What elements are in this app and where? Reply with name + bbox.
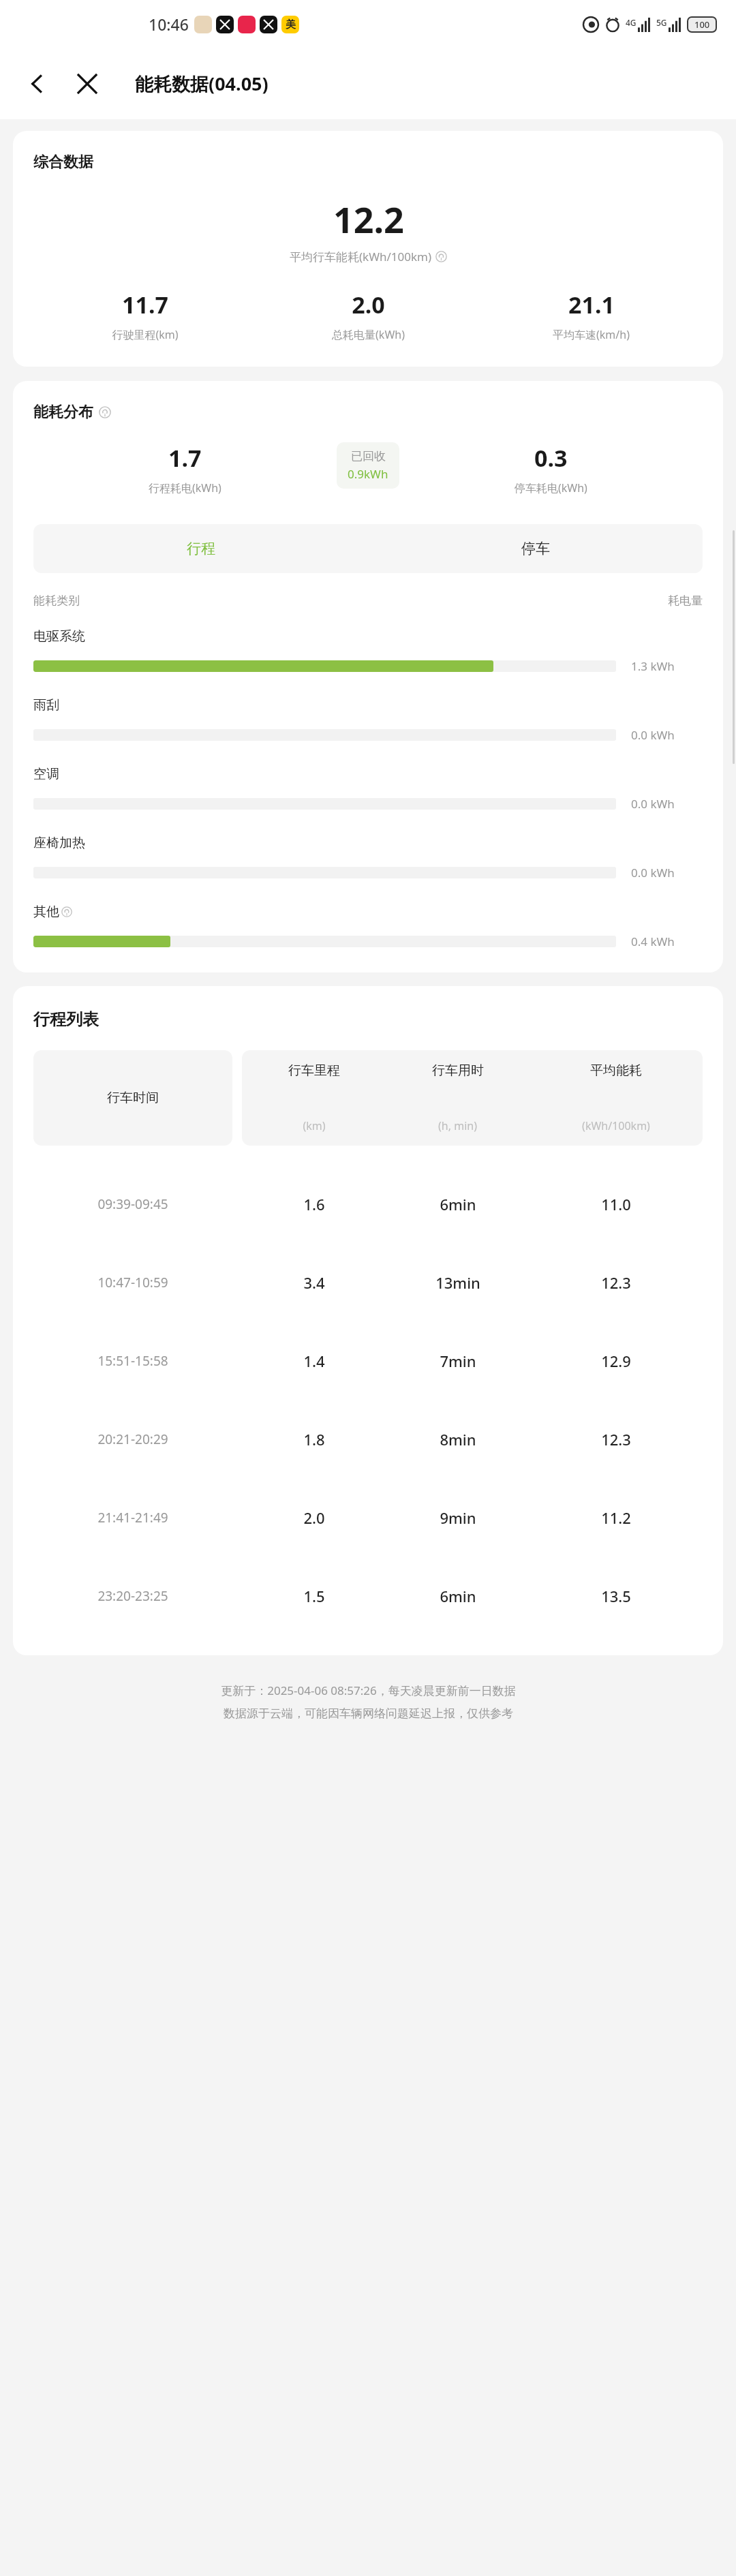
staticText: 13.5 — [601, 1586, 631, 1606]
staticText: 12.9 — [601, 1351, 631, 1371]
button[interactable]: Close — [65, 62, 109, 106]
staticText: 行程耗电(kWh) — [149, 480, 221, 495]
staticText: 行程 — [187, 540, 215, 557]
button[interactable]: 23:20-23:25 — [33, 1557, 703, 1635]
staticText: 21:41-21:49 — [97, 1509, 168, 1527]
staticText: (kWh/100km) — [582, 1118, 650, 1133]
staticText: 行程列表 — [33, 1009, 99, 1030]
staticText: 5G — [656, 17, 667, 28]
staticText: 数据源于云端，可能因车辆网络问题延迟上报，仅供参考 — [224, 1706, 513, 1721]
staticText: 1.8 — [303, 1429, 325, 1450]
staticText: 4G — [626, 17, 637, 28]
staticText: 其他 — [33, 904, 59, 920]
button[interactable]: 10:47-10:59 — [33, 1243, 703, 1321]
staticText: 6min — [440, 1194, 476, 1214]
staticText: 13min — [435, 1272, 480, 1293]
staticText: 15:51-15:58 — [97, 1352, 168, 1370]
staticText: 0.4 kWh — [631, 934, 675, 949]
staticText: 能耗分布 — [33, 403, 93, 422]
staticText: 11.2 — [601, 1507, 631, 1528]
button[interactable]: 行程 — [33, 524, 368, 573]
staticText: 11.0 — [601, 1194, 631, 1214]
button[interactable]: 21:41-21:49 — [33, 1478, 703, 1557]
staticText: 0.3 — [534, 442, 568, 474]
staticText: 美 — [286, 18, 296, 31]
staticText: 平均能耗 — [590, 1062, 642, 1079]
staticText: 7min — [440, 1351, 476, 1371]
staticText: (km) — [303, 1118, 326, 1133]
staticText: 空调 — [33, 766, 59, 782]
staticText: 1.3 kWh — [631, 658, 675, 674]
button[interactable]: 09:39-09:45 — [33, 1165, 703, 1243]
button[interactable]: 停车 — [368, 524, 703, 573]
staticText: 雨刮 — [33, 697, 59, 714]
staticText: 23:20-23:25 — [97, 1587, 168, 1605]
staticText: 2.0 — [352, 289, 385, 320]
staticText: 平均行车能耗(kWh/100km) — [290, 249, 432, 264]
staticText: 1.6 — [303, 1194, 325, 1214]
staticText: 12.3 — [601, 1429, 631, 1450]
staticText: 总耗电量(kWh) — [332, 327, 405, 342]
staticText: 0.9kWh — [348, 466, 388, 482]
button[interactable]: Back — [15, 62, 59, 106]
staticText: 12.2 — [333, 195, 404, 243]
staticText: 行车时间 — [107, 1090, 159, 1106]
staticText: 20:21-20:29 — [97, 1430, 168, 1448]
staticText: 行车用时 — [432, 1062, 484, 1079]
staticText: 10:47-10:59 — [97, 1274, 168, 1291]
staticText: 行驶里程(km) — [112, 327, 179, 342]
staticText: 能耗类别 — [33, 594, 80, 608]
staticText: 1.7 — [168, 442, 202, 474]
staticText: 已回收 — [351, 449, 386, 463]
staticText: 09:39-09:45 — [97, 1195, 168, 1213]
staticText: 100 — [694, 18, 710, 31]
staticText: 能耗数据(04.05) — [135, 71, 269, 96]
staticText: 21.1 — [568, 289, 615, 320]
staticText: 0.0 kWh — [631, 796, 675, 812]
staticText: 10:46 — [149, 14, 189, 35]
staticText: 更新于：2025-04-06 08:57:26，每天凌晨更新前一日数据 — [221, 1683, 516, 1698]
staticText: 电驱系统 — [33, 628, 85, 645]
staticText: 2.0 — [303, 1507, 325, 1528]
staticText: 平均车速(km/h) — [553, 327, 630, 342]
staticText: 9min — [440, 1507, 476, 1528]
staticText: 1.4 — [303, 1351, 325, 1371]
button[interactable]: 20:21-20:29 — [33, 1400, 703, 1478]
staticText: 停车 — [521, 540, 550, 557]
staticText: 座椅加热 — [33, 835, 85, 851]
staticText: 6min — [440, 1586, 476, 1606]
staticText: 3.4 — [303, 1272, 325, 1293]
staticText: 0.0 kWh — [631, 727, 675, 743]
staticText: 综合数据 — [33, 153, 93, 172]
button[interactable]: 15:51-15:58 — [33, 1321, 703, 1400]
staticText: 12.3 — [601, 1272, 631, 1293]
staticText: (h, min) — [438, 1118, 477, 1133]
staticText: 11.7 — [122, 289, 168, 320]
staticText: 1.5 — [303, 1586, 325, 1606]
staticText: 0.0 kWh — [631, 865, 675, 880]
staticText: 耗电量 — [668, 594, 703, 608]
staticText: 停车耗电(kWh) — [515, 480, 587, 495]
staticText: 8min — [440, 1429, 476, 1450]
staticText: 行车里程 — [288, 1062, 340, 1079]
